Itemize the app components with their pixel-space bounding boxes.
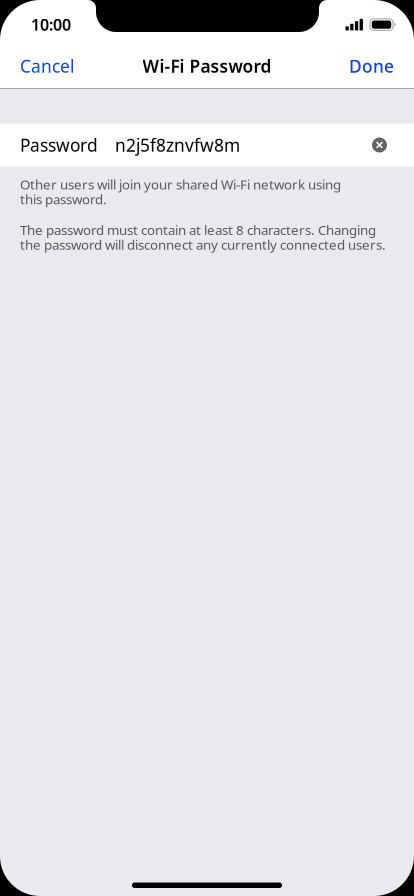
button[interactable]: Clear password [372,137,387,152]
staticText: The password must contain at least 8 cha… [20,221,386,253]
staticText: n2j5f8znvfw8m [115,133,240,156]
staticText: Done [349,54,394,77]
button[interactable]: Cancel [16,46,78,85]
staticText: Cancel [20,54,74,77]
staticText: Password [20,133,98,156]
staticText: Other users will join your shared Wi-Fi … [20,175,341,208]
button[interactable]: Done [345,46,398,85]
staticText: Wi-Fi Password [142,54,271,77]
staticText: 10:00 [31,14,71,35]
